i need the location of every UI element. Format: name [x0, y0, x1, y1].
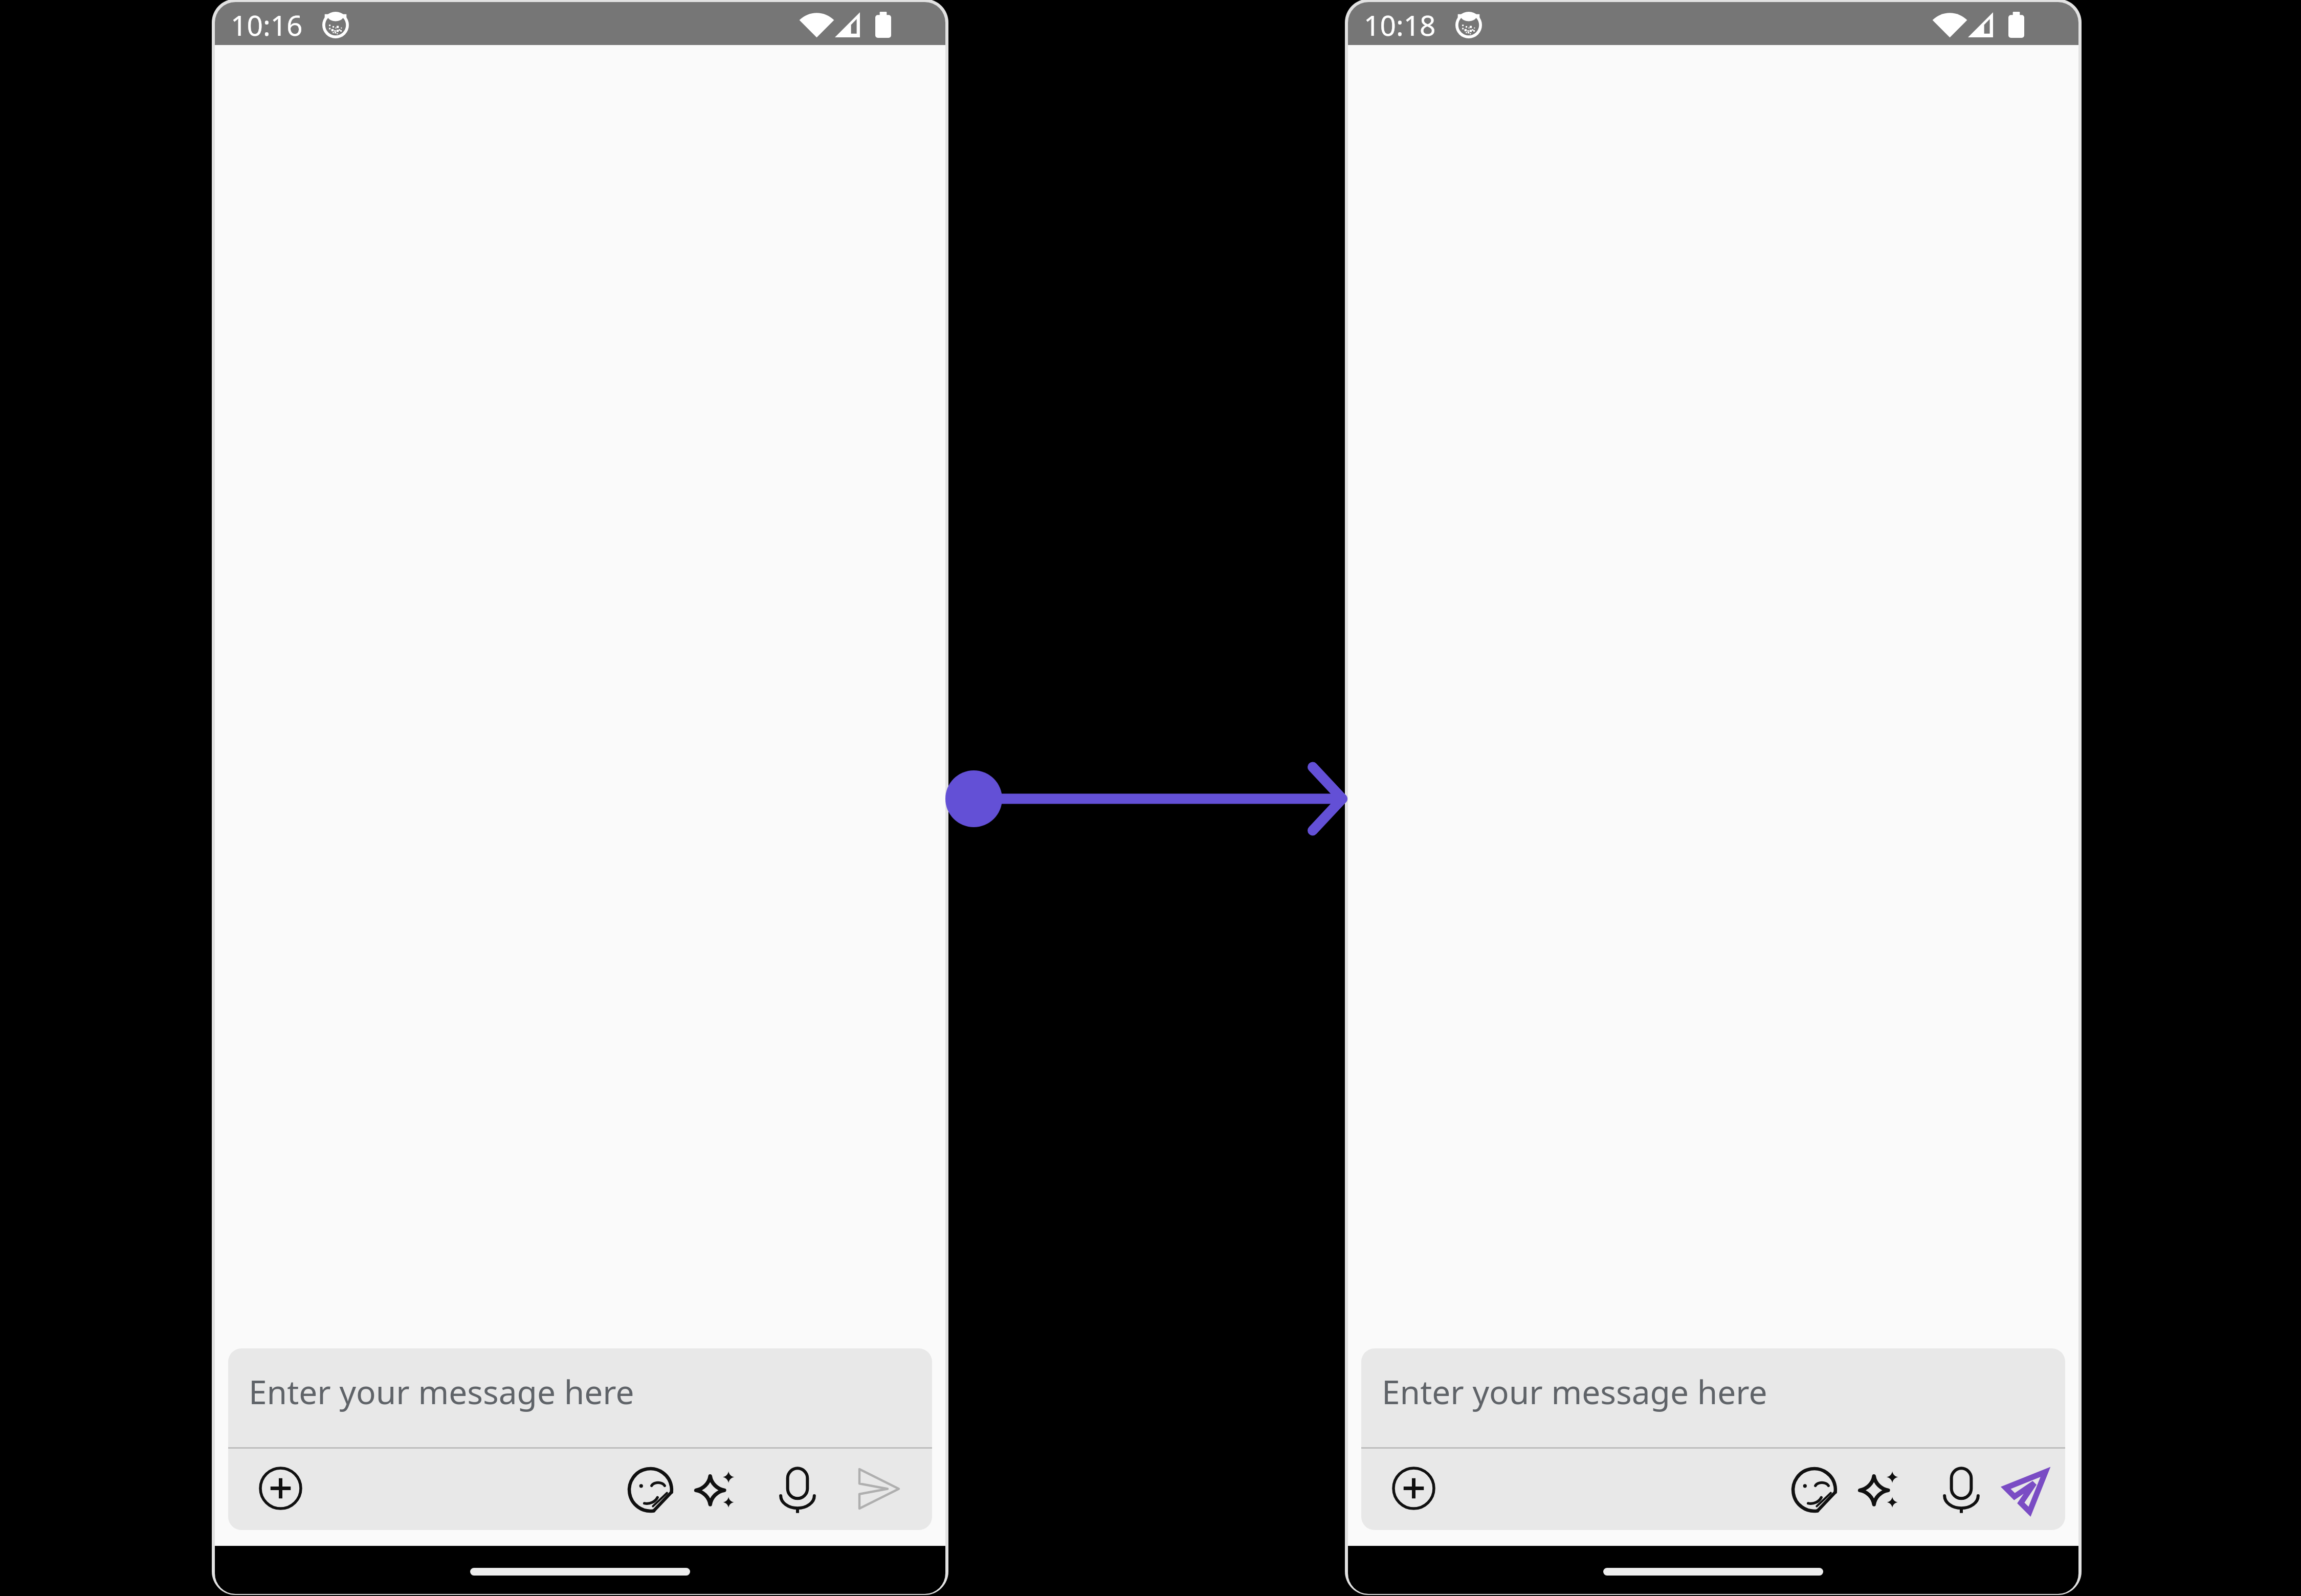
- staticText: 10:16: [231, 6, 303, 44]
- button[interactable]: Smart compose: [691, 1465, 740, 1514]
- button[interactable]: Send: [853, 1463, 904, 1514]
- button[interactable]: Enter your message here: [1361, 1348, 2065, 1530]
- button[interactable]: Add attachment: [1389, 1464, 1438, 1513]
- staticText: Enter your message here: [249, 1369, 634, 1414]
- button[interactable]: Smart compose: [1854, 1465, 1904, 1514]
- button[interactable]: Enter your message here: [228, 1348, 932, 1530]
- button[interactable]: Stickers: [1787, 1463, 1841, 1516]
- button[interactable]: Voice input: [773, 1466, 822, 1515]
- button[interactable]: Stickers: [624, 1463, 677, 1516]
- button[interactable]: Voice input: [1937, 1466, 1986, 1515]
- staticText: Enter your message here: [1382, 1369, 1767, 1414]
- staticText: 10:18: [1364, 6, 1436, 44]
- button[interactable]: Send: [2005, 1461, 2056, 1512]
- button[interactable]: Add attachment: [256, 1464, 305, 1513]
